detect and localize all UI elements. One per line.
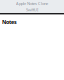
staticText: Notes — [2, 18, 17, 25]
staticText: SwiftUI — [26, 7, 38, 12]
staticText: Apple Notes Clone — [16, 1, 48, 6]
